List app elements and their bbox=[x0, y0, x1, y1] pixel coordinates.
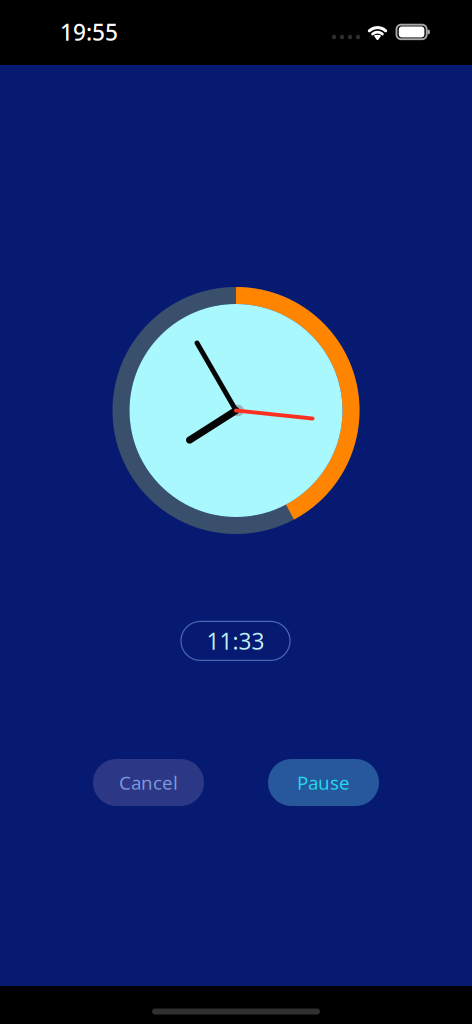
staticText: 11:33 bbox=[206, 626, 264, 656]
button[interactable]: Pause bbox=[268, 759, 379, 806]
staticText: Pause bbox=[297, 770, 350, 795]
button[interactable]: Cancel bbox=[93, 759, 204, 806]
staticText: 19:55 bbox=[60, 17, 118, 47]
staticText: Cancel bbox=[119, 770, 178, 795]
